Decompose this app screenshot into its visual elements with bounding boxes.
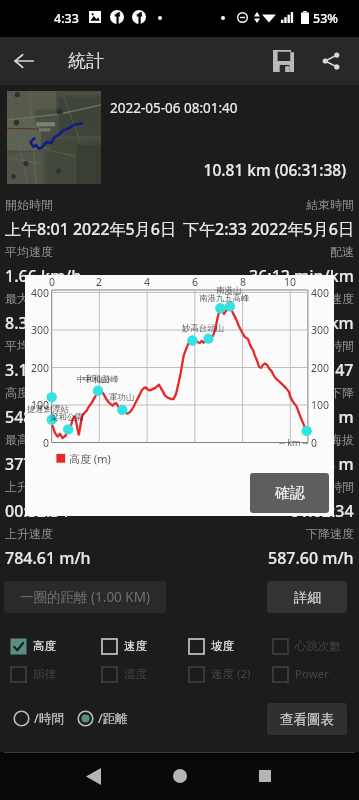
staticText: 妙高台頭山	[182, 323, 224, 334]
staticText: 300	[311, 323, 330, 337]
staticText: 一圈的距離 (1.00 KM)	[20, 588, 151, 606]
staticText: 詳細	[294, 589, 321, 606]
staticText: /距離	[98, 710, 128, 727]
staticText: 532 m	[307, 406, 354, 428]
staticText: 4:33	[54, 10, 79, 27]
staticText: 587.60 m/h	[268, 547, 354, 569]
staticText: 3.12 km/h	[5, 359, 82, 381]
staticText: 捷運劍潭站	[27, 404, 69, 415]
button[interactable]: Home	[165, 752, 195, 800]
staticText: 784.61 m/h	[5, 547, 91, 569]
staticText: 548 m	[5, 406, 52, 428]
staticText: 上升時間	[5, 479, 53, 494]
staticText: 400	[311, 286, 330, 300]
button[interactable]: Back	[78, 752, 108, 800]
button[interactable]: 溫度	[101, 665, 147, 683]
staticText: 36:12 min/km	[249, 265, 354, 287]
staticText: 上午8:01 2022年5月6日	[5, 218, 176, 240]
button[interactable]: 速度	[101, 637, 147, 655]
staticText: 200	[31, 361, 50, 375]
staticText: 開始時間	[5, 197, 53, 212]
staticText: 200	[311, 361, 330, 375]
staticText: 中和仙跡峰	[77, 374, 119, 385]
staticText: 0	[311, 436, 318, 450]
staticText: 溫度	[124, 667, 147, 681]
staticText: 2022-05-06 08:01:40	[110, 99, 238, 117]
staticText: 100	[311, 398, 330, 412]
button[interactable]: 坡度	[188, 637, 234, 655]
staticText: 速度 (2)	[211, 666, 251, 682]
staticText: 300	[31, 323, 50, 337]
staticText: 3:28:47	[299, 359, 354, 381]
staticText: 高度下降	[306, 385, 354, 400]
staticText: -- km --	[279, 436, 309, 448]
button[interactable]: Save	[259, 37, 307, 85]
staticText: 7:11 min/km	[258, 312, 354, 334]
staticText: 高度上升	[5, 385, 53, 400]
button[interactable]: 韻律	[10, 665, 56, 683]
staticText: 0	[49, 275, 56, 289]
staticText: 高度	[33, 639, 56, 653]
staticText: 0	[43, 436, 50, 450]
staticText: 坡度	[211, 639, 234, 653]
staticText: 01:02:34	[290, 500, 354, 522]
staticText: 24 m	[316, 453, 354, 475]
button[interactable]: /距離	[77, 709, 128, 727]
staticText: 最低海拔	[306, 432, 354, 447]
staticText: 6	[192, 275, 199, 289]
staticText: 377 m	[5, 453, 52, 475]
staticText: 2	[96, 275, 103, 289]
staticText: Power	[295, 666, 329, 682]
staticText: 梁和公園	[50, 412, 84, 423]
staticText: 移動時間	[306, 338, 354, 353]
button[interactable]: 一圈的距離 (1.00 KM)	[4, 581, 166, 613]
staticText: /時間	[34, 710, 64, 727]
staticText: 南港九五高峰	[199, 293, 250, 304]
staticText: 結束時間	[306, 197, 354, 212]
button[interactable]: 心跳次數	[272, 637, 341, 655]
button[interactable]: 詳細	[267, 581, 347, 613]
button[interactable]: 速度 (2)	[188, 665, 251, 683]
staticText: 速度	[124, 639, 147, 653]
staticText: 平均速度	[5, 244, 53, 259]
staticText: 統計	[68, 50, 104, 73]
staticText: 最高速度	[306, 291, 354, 306]
staticText: 上升速度	[5, 526, 53, 541]
button[interactable]: 高度	[10, 637, 56, 655]
button[interactable]: 確認	[250, 473, 329, 513]
staticText: 南港山	[216, 285, 242, 296]
staticText: 00:52:34	[5, 500, 69, 522]
staticText: 韻律	[33, 667, 56, 681]
staticText: 確認	[275, 484, 305, 503]
staticText: 10	[284, 275, 297, 289]
button[interactable]: Share	[307, 37, 355, 85]
staticText: 下午2:33 2022年5月6日	[183, 218, 354, 240]
button[interactable]: /時間	[13, 709, 64, 727]
staticText: 8	[240, 275, 247, 289]
staticText: 平均移動速度	[5, 338, 77, 353]
staticText: 4	[144, 275, 151, 289]
button[interactable]: Recent apps	[250, 752, 280, 800]
staticText: 8.35 km/h	[5, 312, 82, 334]
staticText: 中和山	[84, 374, 110, 385]
staticText: 查看圖表	[280, 711, 334, 728]
staticText: 1.66 km/h	[5, 265, 82, 287]
staticText: 配速	[330, 244, 354, 259]
staticText: 100	[31, 398, 50, 412]
button[interactable]: Power	[272, 665, 329, 683]
staticText: 心跳次數	[295, 639, 341, 653]
staticText: 下降時間	[306, 479, 354, 494]
staticText: 53%	[313, 10, 338, 27]
staticText: 最大速度	[5, 291, 53, 306]
staticText: 最高海拔	[5, 432, 53, 447]
button[interactable]: 查看圖表	[267, 703, 347, 735]
staticText: 高度 (m)	[69, 451, 111, 466]
staticText: 10.81 km (06:31:38)	[0, 159, 346, 180]
staticText: 400	[31, 286, 50, 300]
staticText: 軍功山	[109, 392, 135, 403]
button[interactable]: Back	[0, 37, 48, 85]
staticText: 下降速度	[306, 526, 354, 541]
